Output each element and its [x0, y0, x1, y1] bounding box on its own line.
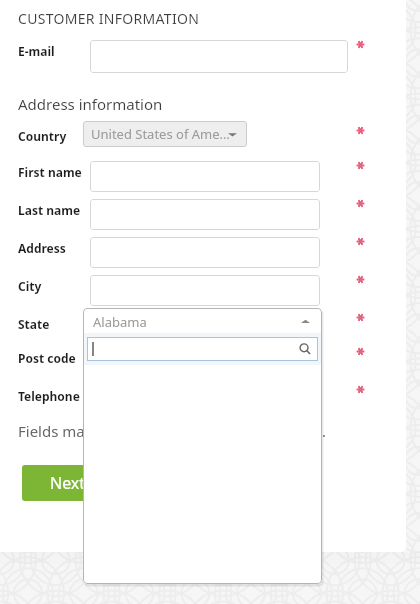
- button[interactable]: Search states: [87, 337, 318, 361]
- button[interactable]: Alabama: [86, 310, 320, 333]
- button[interactable]: [90, 275, 320, 306]
- staticText: Last name: [18, 202, 81, 218]
- staticText: CUSTOMER INFORMATION: [18, 9, 200, 28]
- button[interactable]: [90, 199, 320, 230]
- staticText: Address information: [18, 94, 163, 114]
- button[interactable]: United States of Ame…: [83, 121, 247, 147]
- staticText: Fields marked with an asterisk are requi…: [18, 421, 326, 441]
- staticText: City: [18, 278, 42, 294]
- staticText: E-mail: [18, 43, 55, 59]
- staticText: Alabama: [93, 313, 147, 331]
- staticText: State: [18, 316, 50, 332]
- staticText: Address: [18, 240, 66, 256]
- button[interactable]: [90, 237, 320, 268]
- button[interactable]: [90, 161, 320, 192]
- staticText: Post code: [18, 350, 76, 366]
- staticText: Next: [50, 472, 86, 494]
- staticText: United States of Ame…: [91, 125, 230, 143]
- button[interactable]: [90, 40, 348, 73]
- button[interactable]: Next: [22, 465, 114, 501]
- staticText: Country: [18, 128, 67, 144]
- staticText: First name: [18, 164, 82, 180]
- staticText: Telephone: [18, 388, 80, 404]
